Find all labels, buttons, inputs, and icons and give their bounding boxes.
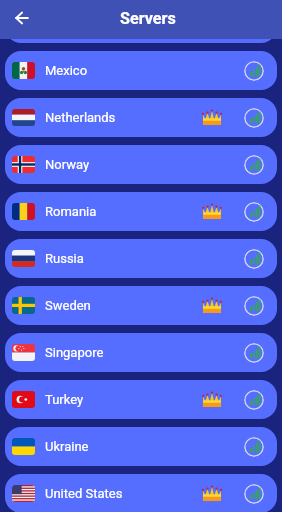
staticText: Ukraine <box>45 439 89 454</box>
staticText: Russia <box>45 251 84 266</box>
button[interactable]: Romania <box>5 192 277 231</box>
button[interactable]: Connect <box>244 484 264 504</box>
button[interactable]: Connect <box>244 155 264 175</box>
staticText: Sweden <box>45 298 91 313</box>
button[interactable]: Connect <box>244 296 264 316</box>
staticText: Netherlands <box>45 110 116 125</box>
staticText: Servers <box>120 9 176 28</box>
button[interactable]: Connect <box>244 61 264 81</box>
button[interactable]: Ukraine <box>5 427 277 466</box>
staticText: Mexico <box>45 63 88 78</box>
button[interactable]: Connect <box>244 249 264 269</box>
button[interactable]: Norway <box>5 145 277 184</box>
staticText: Singapore <box>45 345 104 360</box>
button[interactable]: Turkey <box>5 380 277 419</box>
button[interactable]: Sweden <box>5 286 277 325</box>
staticText: Romania <box>45 204 97 219</box>
button[interactable]: Singapore <box>5 333 277 372</box>
button[interactable]: Connect <box>244 437 264 457</box>
button[interactable]: Netherlands <box>5 98 277 137</box>
button[interactable]: Connect <box>244 202 264 222</box>
button[interactable]: Back <box>9 5 35 31</box>
staticText: Turkey <box>45 392 84 407</box>
button[interactable]: United States <box>5 474 277 512</box>
button[interactable]: Connect <box>244 343 264 363</box>
staticText: United States <box>45 486 123 501</box>
button[interactable]: Mexico <box>5 51 277 90</box>
button[interactable]: Russia <box>5 239 277 278</box>
button[interactable]: Connect <box>244 108 264 128</box>
button[interactable]: Connect <box>244 390 264 410</box>
staticText: Norway <box>45 157 90 172</box>
